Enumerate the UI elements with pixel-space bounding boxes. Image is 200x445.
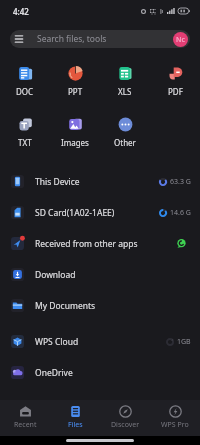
staticText: Images xyxy=(61,137,89,148)
button[interactable]: Account xyxy=(173,32,188,47)
staticText: Recent xyxy=(14,420,37,430)
button[interactable]: This Device xyxy=(0,166,200,197)
staticText: WPS Cloud xyxy=(35,336,79,348)
staticText: 14.6 G xyxy=(170,208,191,218)
button[interactable]: SD Card(1A02-1AEE) xyxy=(0,197,200,228)
button[interactable]: WPS Cloud xyxy=(0,326,200,357)
button[interactable]: My Documents xyxy=(0,290,200,321)
button[interactable]: Other xyxy=(100,117,150,148)
button[interactable]: TXT xyxy=(0,117,50,148)
staticText: Search files, tools xyxy=(37,33,107,45)
button[interactable]: PDF xyxy=(150,66,200,97)
button[interactable]: Discover xyxy=(100,405,150,430)
staticText: Discover xyxy=(111,420,140,430)
button[interactable]: PPT xyxy=(50,66,100,97)
staticText: DOC xyxy=(16,86,34,97)
staticText: This Device xyxy=(35,176,80,188)
button[interactable]: DOC xyxy=(0,66,50,97)
staticText: 63.3 G xyxy=(170,177,191,187)
staticText: 1GB xyxy=(177,337,191,347)
button[interactable]: OneDrive xyxy=(0,357,200,388)
button[interactable]: Menu xyxy=(10,30,28,48)
button[interactable]: Recent xyxy=(0,405,50,430)
button[interactable]: Download xyxy=(0,259,200,290)
staticText: PDF xyxy=(168,86,183,97)
staticText: OneDrive xyxy=(35,367,73,379)
staticText: XLS xyxy=(118,86,132,97)
staticText: Files xyxy=(68,420,83,430)
button[interactable]: Files xyxy=(50,405,100,430)
staticText: Other xyxy=(114,137,136,148)
staticText: Download xyxy=(35,269,76,281)
staticText: WPS Pro xyxy=(161,420,189,430)
staticText: PPT xyxy=(68,86,83,97)
button[interactable]: Menu xyxy=(10,30,190,48)
button[interactable]: XLS xyxy=(100,66,150,97)
staticText: SD Card(1A02-1AEE) xyxy=(35,207,115,219)
button[interactable]: Received from other apps xyxy=(0,228,200,259)
staticText: 4:42 xyxy=(13,6,29,17)
staticText: TXT xyxy=(18,137,32,148)
staticText: Received from other apps xyxy=(35,238,138,250)
button[interactable]: Images xyxy=(50,117,100,148)
staticText: My Documents xyxy=(35,300,96,312)
staticText: Nc xyxy=(176,35,185,45)
button[interactable]: WPS Pro xyxy=(150,405,200,430)
